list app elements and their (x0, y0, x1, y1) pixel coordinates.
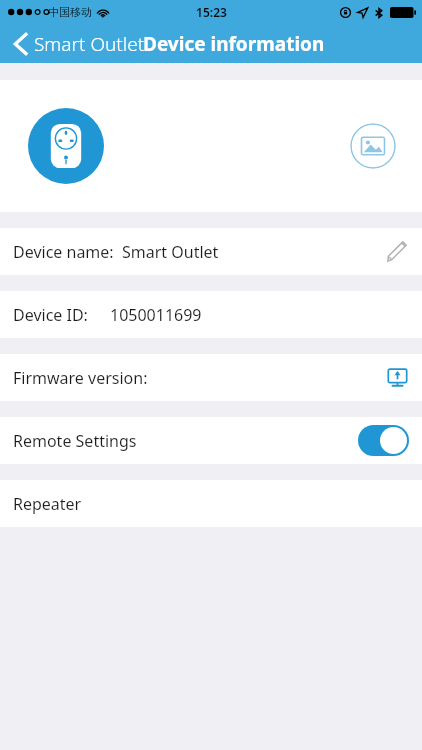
staticText: 中国移动 (48, 5, 92, 19)
button[interactable]: Change device image (350, 123, 396, 169)
other: Back (14, 33, 27, 55)
button[interactable]: Device name: (0, 228, 422, 275)
staticText: Smart Outlet (122, 241, 219, 263)
staticText: Repeater (13, 493, 82, 515)
staticText: Smart Outlet (34, 31, 145, 57)
staticText: 15:23 (196, 4, 227, 20)
button[interactable]: Remote Settings toggle, on (358, 425, 409, 456)
staticText: 1050011699 (110, 304, 202, 326)
other: Edit device name (385, 240, 409, 264)
staticText: Remote Settings (13, 430, 137, 452)
button[interactable]: Device ID: (0, 291, 422, 338)
staticText: Device information (143, 31, 325, 57)
button[interactable]: Back (10, 27, 149, 61)
other: Upgrade firmware (386, 366, 409, 389)
button[interactable]: Remote Settings (0, 417, 422, 464)
button[interactable]: Firmware version: (0, 354, 422, 401)
staticText: Device ID: (13, 304, 88, 326)
button[interactable]: Device icon (28, 108, 104, 184)
staticText: Device name: (13, 241, 114, 263)
staticText: Firmware version: (13, 367, 148, 389)
button[interactable]: Repeater (0, 480, 422, 527)
